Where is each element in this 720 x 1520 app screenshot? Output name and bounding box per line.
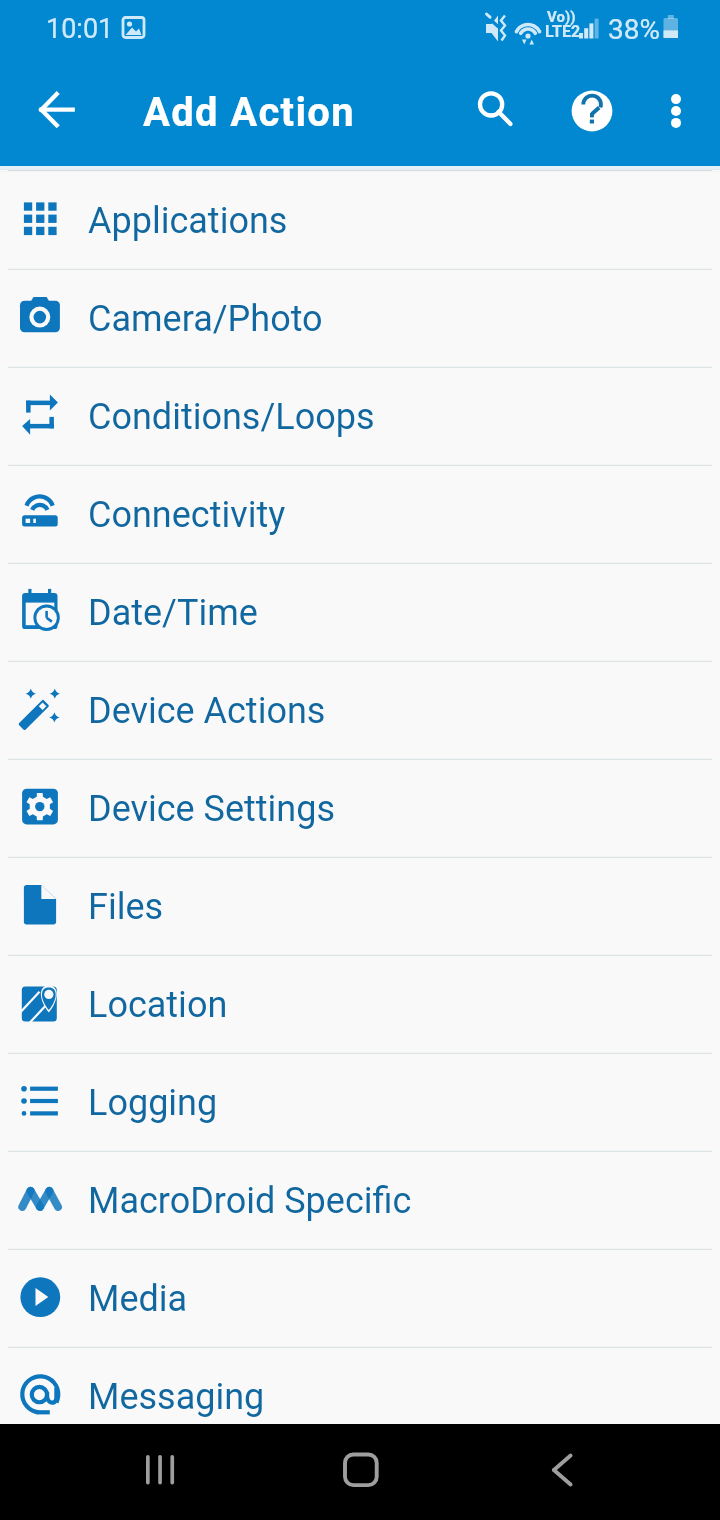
button[interactable]: Date/Time [0,564,720,660]
button[interactable]: Back [502,1424,622,1520]
staticText: Date/Time [88,592,258,634]
staticText: Location [88,984,228,1026]
staticText: Device Actions [88,690,326,732]
staticText: Logging [88,1082,218,1124]
staticText: Device Settings [88,788,335,830]
button[interactable]: Help [542,61,642,161]
button[interactable]: Search [443,61,543,161]
button[interactable]: Recent apps [100,1424,220,1520]
button[interactable]: Messaging [0,1348,720,1444]
staticText: Vo)) [547,8,576,26]
staticText: Files [88,886,164,928]
button[interactable]: Media [0,1250,720,1346]
button[interactable]: Conditions/Loops [0,368,720,464]
button[interactable]: Applications [0,172,720,268]
button[interactable]: Back [6,61,106,161]
staticText: LTE2 [545,22,581,41]
staticText: Messaging [88,1376,265,1418]
button[interactable]: Camera/Photo [0,270,720,366]
button[interactable]: Home [301,1424,421,1520]
staticText: MacroDroid Specific [88,1180,412,1222]
staticText: Conditions/Loops [88,396,375,438]
staticText: Add Action [143,89,355,136]
staticText: Camera/Photo [88,298,323,340]
button[interactable]: Logging [0,1054,720,1150]
staticText: 38% [608,13,660,46]
button[interactable]: Location [0,956,720,1052]
staticText: Media [88,1278,188,1320]
button[interactable]: Device Actions [0,662,720,758]
button[interactable]: More options [626,61,720,161]
staticText: Connectivity [88,494,286,536]
button[interactable]: Files [0,858,720,954]
button[interactable]: MacroDroid Specific [0,1152,720,1248]
button[interactable]: Device Settings [0,760,720,856]
staticText: Applications [88,200,288,242]
button[interactable]: Connectivity [0,466,720,562]
staticText: 10:01 [46,13,114,45]
